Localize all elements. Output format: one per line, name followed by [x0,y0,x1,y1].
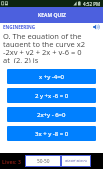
button[interactable]: x +y -4=0 [7,69,96,84]
staticText: -2xy + y2 + 2x + y-6 = 0 [3,47,82,55]
staticText: KEAM QUIZ [38,12,66,19]
staticText: x +y -4=0 [39,73,65,81]
button[interactable]: 2x+y - 6=0 [7,107,96,122]
staticText: 3x + y -8 = 0 [35,130,69,138]
staticText: Q. The equation of the [3,31,82,39]
staticText: 2x+y - 6=0 [37,111,66,119]
button[interactable]: 50-50 [25,155,61,167]
staticText: Lives: 3 [2,158,21,165]
button[interactable]: ಹೊರಗೆ ಹೋಗು [61,155,91,167]
staticText: ಹೊರಗೆ ಹೋಗು [65,158,88,164]
staticText: 4:52 PM [83,1,101,7]
staticText: 2 y +x -6 = 0 [35,92,69,100]
staticText: 50-50 [37,158,50,165]
staticText: at (2, 2) is [3,55,39,63]
button[interactable]: 3x + y -8 = 0 [7,126,96,141]
button[interactable]: Sound [91,23,100,31]
staticText: ENGINEERING [3,24,36,30]
button[interactable]: 2 y +x -6 = 0 [7,88,96,103]
staticText: taugent to the curve x2 [3,39,85,47]
